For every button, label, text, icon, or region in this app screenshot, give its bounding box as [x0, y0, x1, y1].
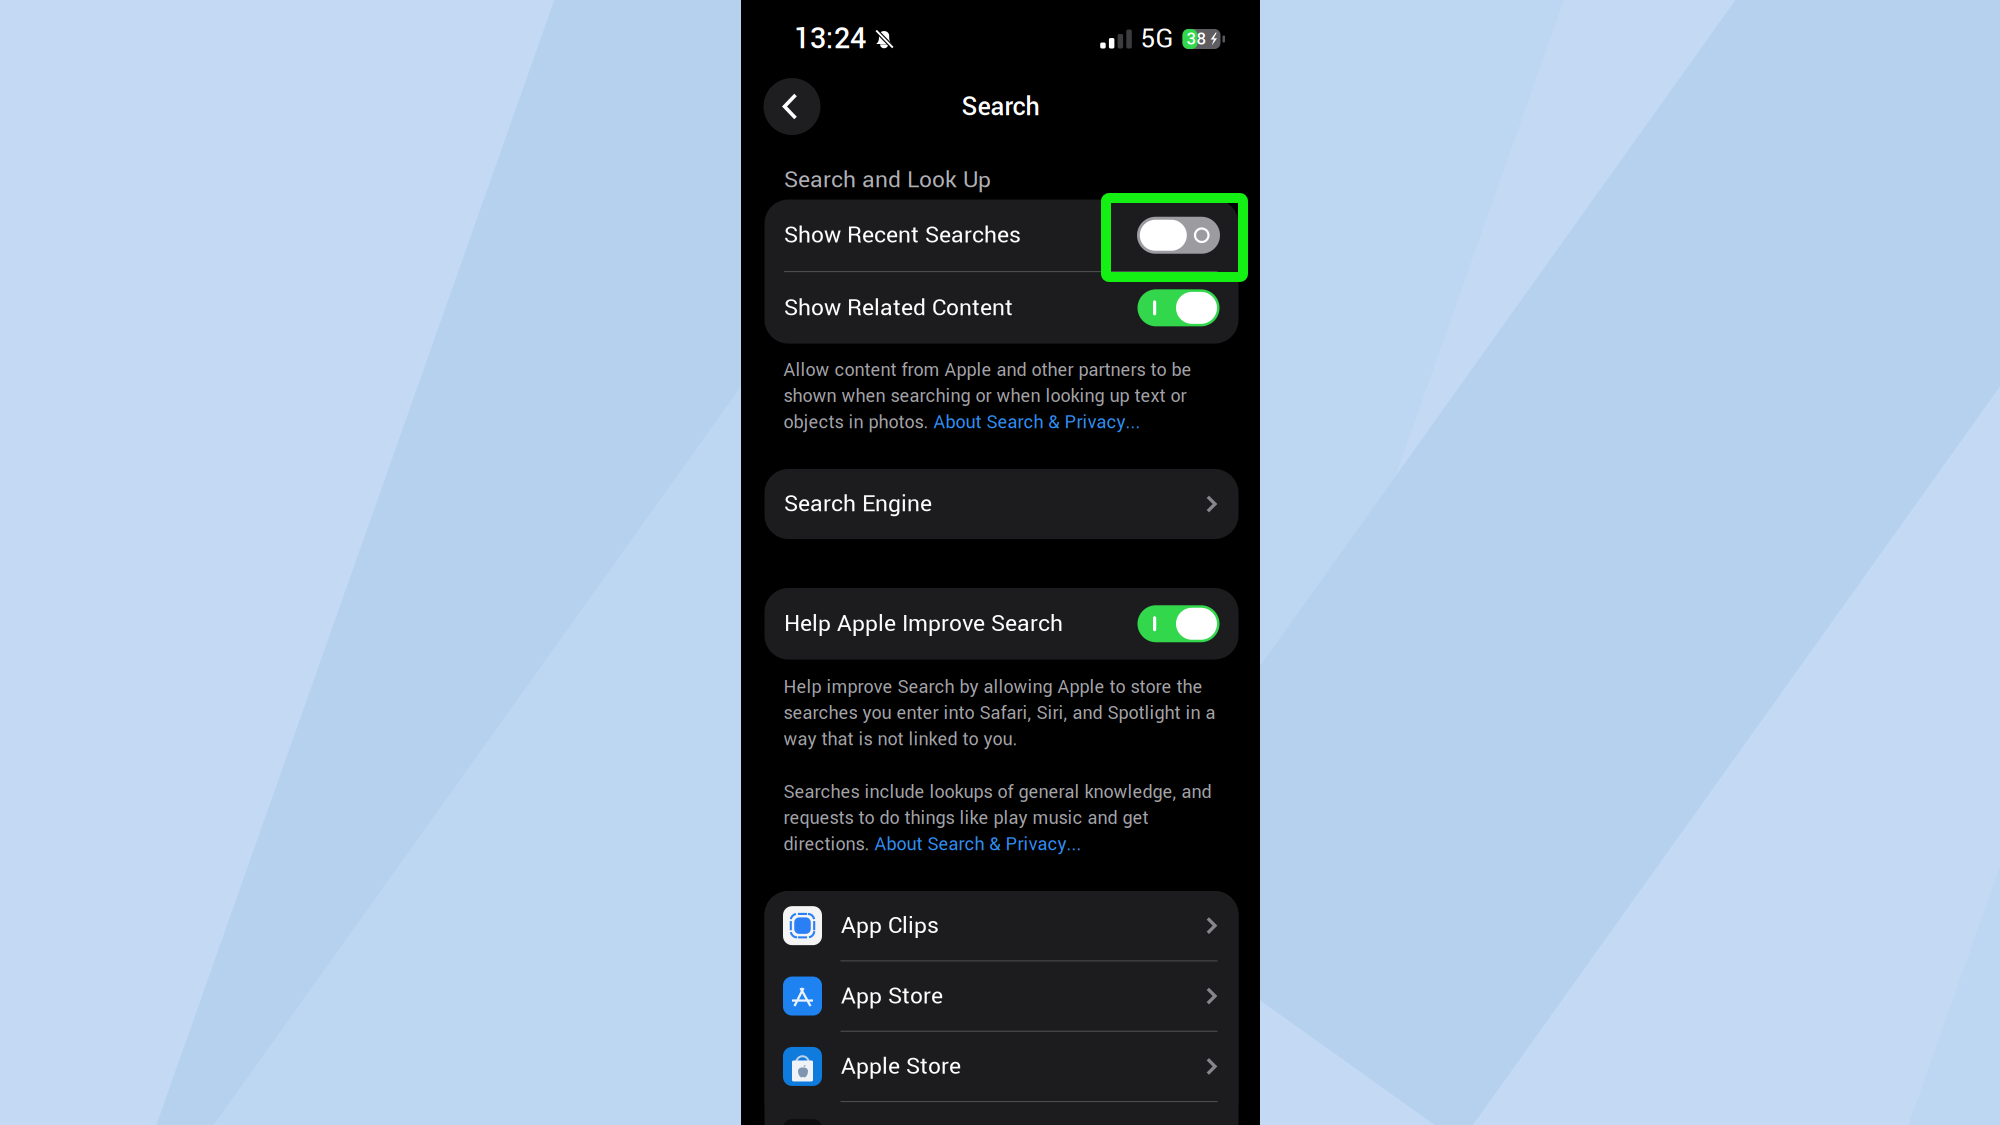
staticText: Allow content from Apple and other partn…	[783, 357, 1191, 383]
button[interactable]: App Store	[764, 961, 1238, 1031]
staticText: directions.	[783, 831, 874, 857]
staticText: way that is not linked to you.	[783, 726, 1017, 752]
staticText: objects in photos.	[783, 409, 933, 435]
staticText: App Clips	[841, 909, 939, 942]
staticText: Search and Look Up	[784, 164, 991, 196]
button[interactable]: Apple Store	[764, 1032, 1238, 1101]
staticText: Search	[961, 89, 1039, 125]
button[interactable]: Show Related Content	[764, 272, 1238, 344]
staticText: requests to do things like play music an…	[783, 805, 1148, 831]
staticText: Show Recent Searches	[784, 219, 1021, 252]
button[interactable]: Show Recent Searches	[764, 199, 1238, 271]
staticText: Apple Store	[841, 1050, 961, 1083]
staticText: searches you enter into Safari, Siri, an…	[783, 700, 1215, 726]
button[interactable]: Back	[763, 78, 820, 135]
staticText: Help improve Search by allowing Apple to…	[783, 674, 1202, 700]
staticText: Search Engine	[784, 488, 932, 520]
staticText: Show Related Content	[784, 291, 1013, 324]
staticText: Searches include lookups of general know…	[783, 779, 1211, 805]
staticText: 38	[1186, 27, 1206, 51]
staticText: shown when searching or when looking up …	[783, 383, 1186, 409]
staticText: About Search & Privacy...	[933, 409, 1140, 435]
button[interactable]: App Clips	[764, 891, 1238, 960]
staticText: 5G	[1140, 20, 1173, 58]
staticText: 13:24	[794, 18, 866, 60]
staticText: App Store	[841, 980, 943, 1012]
button[interactable]: Help Apple Improve Search	[764, 588, 1238, 659]
button[interactable]: Search Engine	[764, 469, 1238, 539]
staticText: Help Apple Improve Search	[784, 607, 1063, 640]
staticText: About Search & Privacy...	[874, 831, 1081, 857]
